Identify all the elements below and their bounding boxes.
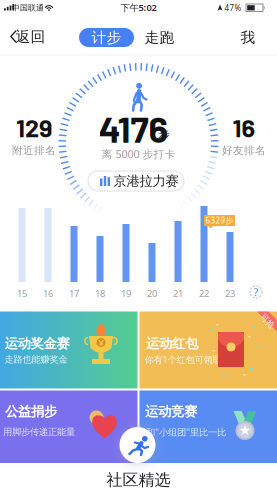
staticText: 好友排名 <box>222 144 266 157</box>
staticText: 6329步 <box>205 215 233 226</box>
staticText: 16 <box>232 112 255 142</box>
staticText: 附近排名 <box>12 144 56 157</box>
staticText: 可抢 <box>259 316 275 326</box>
staticText: 中国联通 <box>12 3 44 13</box>
staticText: 15 <box>17 287 27 300</box>
staticText: 17 <box>69 287 79 300</box>
staticText: ¥ <box>98 336 103 349</box>
staticText: 你有1个红包可领取 <box>144 353 221 366</box>
staticText: 和"小组团"里比一比 <box>146 426 226 438</box>
staticText: 我 <box>240 28 255 46</box>
staticText: 运动竞赛 <box>145 403 197 420</box>
staticText: 公益捐步 <box>5 403 57 420</box>
staticText: 离 5000 步打卡 <box>101 147 175 161</box>
staticText: 23 <box>225 287 235 300</box>
staticText: 计步 <box>91 28 121 46</box>
staticText: 16 <box>43 287 53 300</box>
staticText: 47% <box>224 2 241 13</box>
staticText: 下午5:02 <box>120 1 156 14</box>
staticText: 19 <box>121 287 131 300</box>
staticText: 21 <box>173 287 183 300</box>
staticText: 129 <box>16 112 52 142</box>
staticText: 运动红包 <box>146 335 198 352</box>
staticText: 步 <box>158 127 170 142</box>
staticText: 用脚步传递正能量 <box>3 426 75 438</box>
staticText: 走路也能赚奖金 <box>4 354 67 365</box>
staticText: 4176 <box>98 106 168 150</box>
staticText: ? <box>253 285 258 299</box>
staticText: 社区精选 <box>106 470 170 490</box>
staticText: 返回 <box>15 28 45 46</box>
staticText: 22 <box>199 287 209 300</box>
staticText: 18 <box>95 287 105 300</box>
staticText: 走跑 <box>144 28 174 46</box>
staticText: 京港拉力赛 <box>113 173 178 189</box>
staticText: 运动奖金赛 <box>4 335 69 352</box>
staticText: 20 <box>147 287 157 300</box>
